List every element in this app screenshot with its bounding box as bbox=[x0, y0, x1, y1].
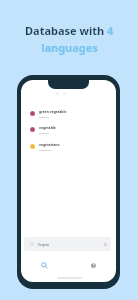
staticText: vegetable bbox=[39, 125, 56, 130]
staticText: brassica bbox=[39, 115, 49, 118]
button[interactable]: green vegetable bbox=[21, 105, 116, 121]
staticText: languages bbox=[41, 40, 98, 55]
button[interactable]: Library bbox=[87, 259, 100, 272]
staticText: vegetarian bbox=[39, 148, 52, 151]
staticText: Database with bbox=[25, 23, 107, 38]
staticText: green vegetable bbox=[39, 109, 67, 114]
button[interactable]: vegetable bbox=[21, 121, 116, 137]
staticText: 4 bbox=[107, 23, 114, 38]
staticText: et cetera bbox=[39, 131, 50, 134]
button[interactable]: vegetariano bbox=[21, 138, 116, 154]
staticText: vegetariano bbox=[39, 142, 60, 147]
button[interactable]: Search bbox=[38, 259, 51, 272]
button[interactable]: Vegeta bbox=[24, 237, 111, 251]
staticText: Vegeta bbox=[38, 242, 50, 247]
